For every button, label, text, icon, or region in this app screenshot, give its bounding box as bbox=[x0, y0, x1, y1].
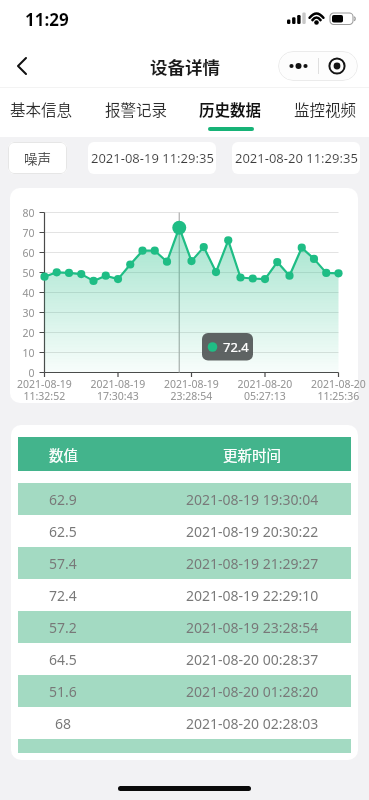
staticText: 51.6 bbox=[49, 682, 77, 701]
staticText: 2021-08-19 23:28:54 bbox=[186, 618, 319, 637]
button[interactable]: 历史数据 bbox=[199, 88, 262, 137]
staticText: 62.5 bbox=[49, 522, 77, 541]
button[interactable]: 62.9 bbox=[18, 483, 351, 515]
staticText: 数值 bbox=[49, 444, 78, 465]
staticText: 11:29 bbox=[25, 8, 69, 31]
staticText: 57.2 bbox=[49, 618, 77, 637]
staticText: 噪声 bbox=[24, 148, 51, 168]
staticText: 2021-08-19 11:29:35 bbox=[91, 149, 214, 167]
staticText: 2021-08-19 20:30:22 bbox=[186, 522, 319, 541]
staticText: 更新时间 bbox=[223, 444, 281, 465]
staticText: 2021-08-20 02:28:03 bbox=[186, 714, 319, 733]
staticText: 2021-08-19 22:29:10 bbox=[186, 586, 319, 605]
button[interactable]: 2021-08-19 11:29:35 bbox=[88, 142, 216, 174]
button[interactable]: 57.2 bbox=[18, 611, 351, 643]
staticText: 2021-08-20 11:29:35 bbox=[235, 149, 358, 167]
staticText: 57.4 bbox=[49, 554, 77, 573]
button[interactable]: 72.4 bbox=[18, 579, 351, 611]
staticText: 2021-08-20 00:28:37 bbox=[186, 650, 319, 669]
button[interactable]: 监控视频 bbox=[294, 88, 357, 137]
staticText: 2021-08-19 19:30:04 bbox=[186, 490, 319, 509]
button[interactable] bbox=[6, 50, 38, 82]
button[interactable]: 基本信息 bbox=[10, 88, 73, 137]
staticText: 历史数据 bbox=[199, 98, 262, 120]
button[interactable] bbox=[278, 51, 358, 81]
staticText: 2021-08-20 01:28:20 bbox=[186, 682, 319, 701]
staticText: 62.9 bbox=[49, 490, 77, 509]
button[interactable]: 2021-08-20 11:29:35 bbox=[232, 142, 360, 174]
staticText: 68 bbox=[55, 714, 72, 733]
staticText: 监控视频 bbox=[294, 98, 357, 120]
staticText: 2021-08-19 21:29:27 bbox=[186, 554, 319, 573]
staticText: 基本信息 bbox=[10, 98, 73, 120]
staticText: 64.5 bbox=[49, 650, 77, 669]
button[interactable]: 51.6 bbox=[18, 675, 351, 707]
staticText: 报警记录 bbox=[105, 98, 168, 120]
button[interactable]: 57.4 bbox=[18, 547, 351, 579]
button[interactable]: 报警记录 bbox=[105, 88, 168, 137]
staticText: 72.4 bbox=[49, 586, 77, 605]
button[interactable]: 64.5 bbox=[18, 643, 351, 675]
button[interactable]: 62.5 bbox=[18, 515, 351, 547]
staticText: 设备详情 bbox=[150, 54, 220, 79]
button[interactable]: 噪声 bbox=[8, 142, 67, 174]
button[interactable]: 68 bbox=[18, 707, 351, 739]
